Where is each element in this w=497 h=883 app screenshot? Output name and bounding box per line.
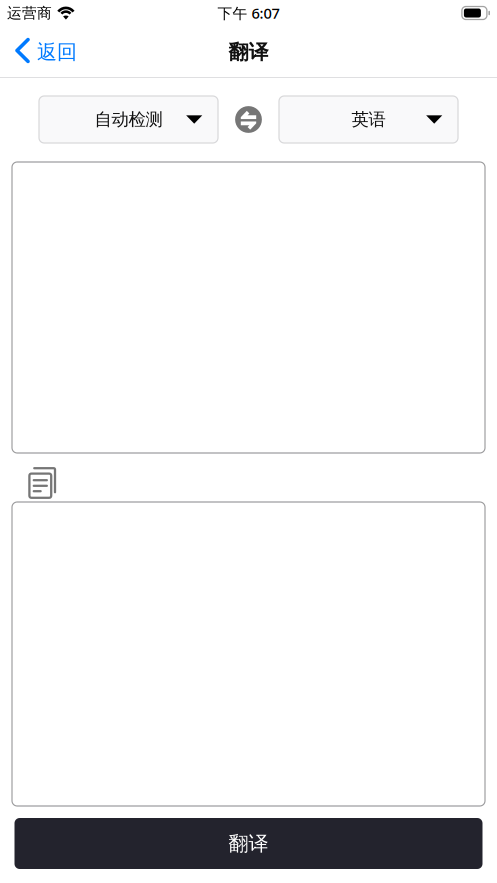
staticText: 英语	[351, 109, 385, 130]
button[interactable]: 英语	[279, 96, 458, 143]
staticText: 下午 6:07	[217, 3, 279, 23]
staticText: 翻译	[228, 831, 268, 856]
staticText: 翻译	[228, 40, 268, 64]
button[interactable]: 翻译	[14, 818, 482, 869]
button[interactable]: 复制	[22, 458, 63, 502]
staticText: 返回	[37, 40, 77, 64]
button[interactable]: 自动检测	[39, 96, 218, 143]
staticText: 自动检测	[94, 109, 162, 130]
button[interactable]: 返回	[0, 31, 89, 73]
button[interactable]: 交换语言	[229, 100, 267, 138]
staticText: 运营商	[7, 4, 52, 22]
